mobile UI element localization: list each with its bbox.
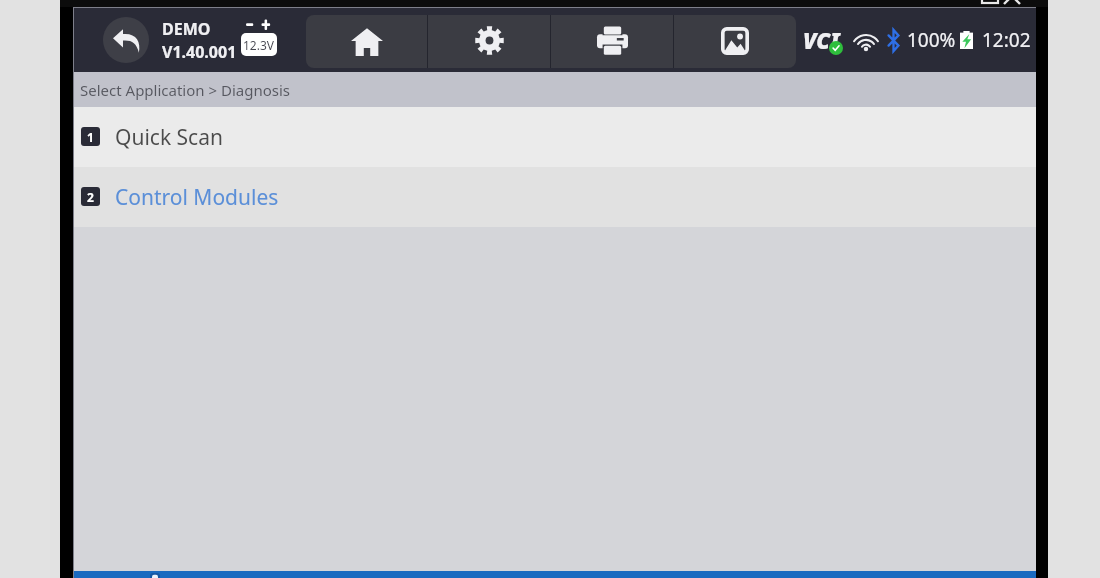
button[interactable]: Back (103, 17, 149, 63)
staticText: Control Modules (115, 183, 279, 212)
staticText: V1.40.001 (162, 41, 237, 63)
button[interactable]: Home (306, 15, 427, 68)
staticText: Quick Scan (115, 123, 223, 152)
button[interactable]: VCI connected (803, 20, 844, 60)
button[interactable]: Wi-Fi (853, 28, 879, 52)
button[interactable]: Settings (428, 15, 550, 68)
staticText: VCI (803, 25, 840, 55)
button[interactable]: 1 (74, 107, 1036, 167)
button[interactable]: Select Application > Diagnosis (74, 72, 1036, 107)
staticText: 12.3V (243, 37, 275, 53)
button[interactable]: Bluetooth (887, 29, 900, 52)
button[interactable]: Print (551, 15, 673, 68)
button[interactable]: Screenshot (674, 15, 796, 68)
staticText: 1 (87, 129, 94, 145)
staticText: Select Application > Diagnosis (80, 80, 290, 100)
staticText: DEMO (162, 18, 211, 40)
staticText: 100% (907, 27, 956, 53)
staticText: 12:02 (982, 27, 1031, 53)
button[interactable]: 2 (74, 167, 1036, 227)
staticText: 2 (87, 189, 94, 205)
